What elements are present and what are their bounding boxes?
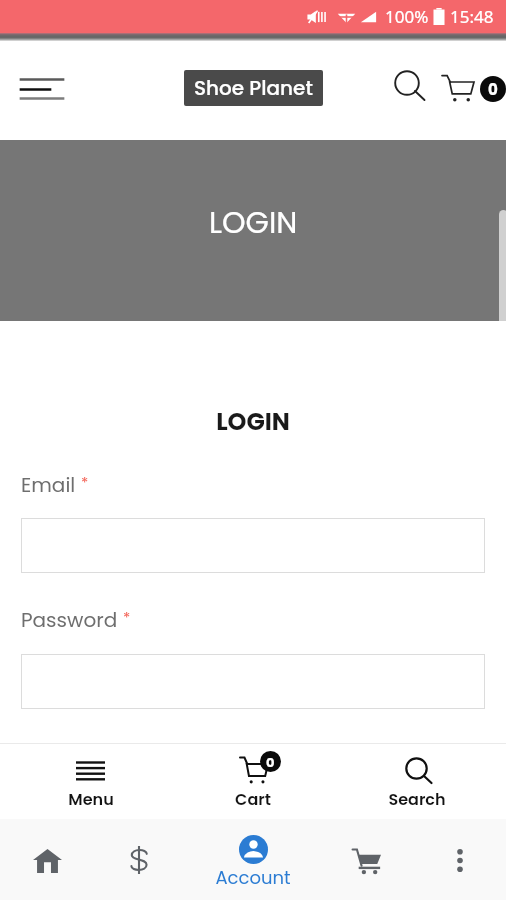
staticText: Shoe Planet xyxy=(194,74,313,102)
button[interactable]: Cart xyxy=(323,831,409,889)
staticText: 15:48 xyxy=(450,5,494,28)
button[interactable]: Shoe Planet xyxy=(184,70,323,106)
button[interactable]: Menu xyxy=(0,66,84,112)
button[interactable] xyxy=(21,518,485,573)
button[interactable]: Cart count xyxy=(480,76,506,102)
staticText: Menu xyxy=(48,788,134,810)
staticText: Account xyxy=(203,865,303,890)
button[interactable]: Search xyxy=(387,63,433,109)
staticText: * xyxy=(81,472,89,493)
staticText: LOGIN xyxy=(209,202,298,244)
button[interactable] xyxy=(21,654,485,709)
button[interactable]: Home xyxy=(4,831,90,889)
staticText: * xyxy=(123,607,131,628)
staticText: Email xyxy=(21,471,76,499)
staticText: LOGIN xyxy=(0,405,506,439)
staticText: Password xyxy=(21,606,118,634)
button[interactable]: More options xyxy=(417,831,503,889)
button[interactable]: Search xyxy=(375,751,459,815)
button[interactable]: Deals xyxy=(96,831,182,889)
button[interactable]: 0 xyxy=(211,747,295,815)
staticText: Cart xyxy=(211,788,295,810)
staticText: 0 xyxy=(266,753,275,771)
staticText: Search xyxy=(375,788,459,810)
staticText: 100% xyxy=(385,5,429,28)
staticText: 0 xyxy=(488,79,498,100)
button[interactable]: Menu xyxy=(48,751,134,815)
button[interactable]: Cart xyxy=(437,63,485,109)
button[interactable]: Account xyxy=(203,819,303,900)
